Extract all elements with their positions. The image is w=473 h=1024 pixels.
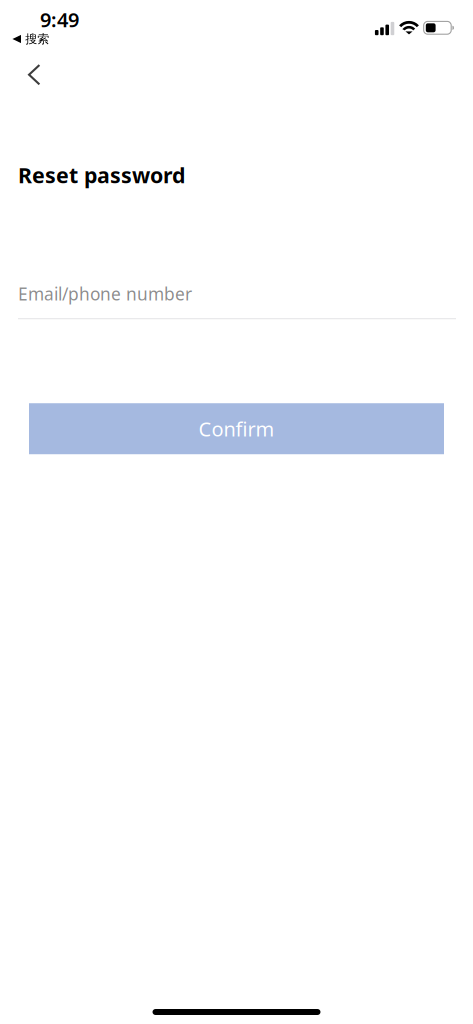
- button[interactable]: 搜索: [0, 29, 49, 44]
- staticText: Confirm: [198, 415, 274, 442]
- button[interactable]: Confirm: [29, 403, 444, 454]
- staticText: 搜索: [25, 32, 49, 46]
- staticText: Email/phone number: [18, 282, 192, 305]
- staticText: 9:49: [40, 6, 79, 33]
- button[interactable]: Email/phone number: [0, 282, 473, 319]
- staticText: Reset password: [18, 161, 185, 189]
- button[interactable]: Back: [0, 52, 64, 96]
